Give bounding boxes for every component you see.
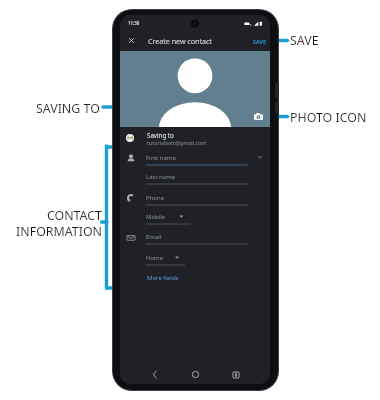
staticText: Saving to bbox=[147, 131, 174, 139]
button[interactable]: Saving to bbox=[120, 128, 270, 150]
button[interactable]: Close bbox=[123, 33, 139, 49]
button[interactable]: Phone bbox=[120, 192, 270, 208]
staticText: Phone bbox=[146, 194, 165, 202]
staticText: Create new contact bbox=[148, 36, 212, 46]
staticText: SAVE bbox=[253, 38, 267, 45]
button[interactable]: Add photo bbox=[252, 110, 265, 123]
staticText: Email bbox=[146, 233, 162, 241]
button[interactable]: SAVE bbox=[252, 35, 268, 47]
button[interactable]: Home bbox=[185, 366, 205, 383]
button[interactable]: Last name bbox=[120, 171, 270, 187]
staticText: CONTACT INFORMATION bbox=[6, 207, 102, 240]
button[interactable]: Recent apps bbox=[226, 366, 246, 383]
staticText: PHOTO ICON bbox=[290, 109, 367, 126]
staticText: tutorialsatt@gmail.com bbox=[147, 139, 207, 146]
staticText: 11:36 bbox=[128, 20, 140, 26]
staticText: SAVE bbox=[290, 32, 319, 49]
staticText: More fields bbox=[147, 274, 179, 282]
staticText: Mobile bbox=[146, 213, 166, 221]
staticText: Home bbox=[146, 254, 164, 262]
button[interactable]: More fields bbox=[145, 272, 181, 284]
staticText: SAVING TO bbox=[36, 100, 100, 117]
button[interactable]: Email bbox=[120, 231, 270, 247]
staticText: First name bbox=[146, 154, 176, 162]
button[interactable]: Back bbox=[144, 366, 164, 383]
staticText: Last name bbox=[146, 173, 176, 181]
button[interactable]: Home bbox=[120, 252, 270, 268]
button[interactable]: First name bbox=[120, 152, 270, 168]
button[interactable]: Mobile bbox=[120, 211, 270, 227]
